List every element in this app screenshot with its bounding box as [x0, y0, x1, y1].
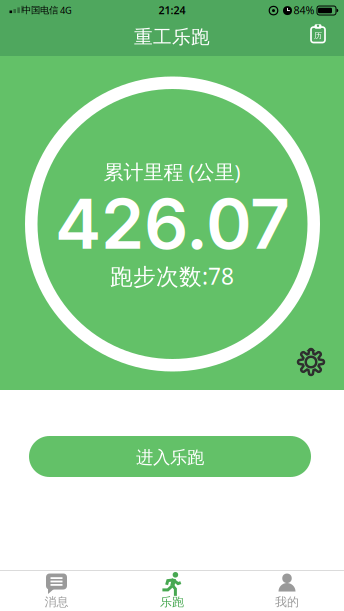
staticText: 4G	[60, 4, 72, 16]
staticText: 累计里程 (公里)	[103, 158, 240, 185]
staticText: 426.07	[55, 182, 290, 265]
staticText: 历	[314, 31, 322, 40]
staticText: 进入乐跑	[136, 447, 204, 468]
staticText: 消息	[44, 595, 68, 609]
staticText: 我的	[275, 595, 299, 609]
staticText: 重工乐跑	[134, 25, 210, 48]
staticText: 84%	[293, 3, 314, 17]
staticText: 跑步次数:78	[110, 261, 234, 291]
staticText: 21:24	[158, 3, 185, 17]
staticText: 乐跑	[160, 595, 184, 609]
staticText: 中国电信	[22, 4, 58, 16]
